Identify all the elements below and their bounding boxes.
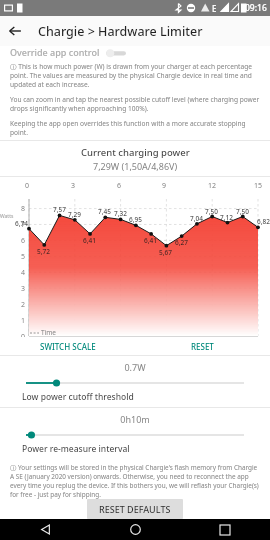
staticText: 7,12 — [220, 213, 233, 222]
staticText: 1 — [21, 316, 26, 326]
staticText: 7,50 — [236, 207, 249, 216]
staticText: 2 — [21, 300, 26, 310]
staticText: Keeping the app open overrides this func… — [10, 119, 260, 137]
staticText: 7,50 — [205, 207, 218, 216]
staticText: Power re-measure interval — [22, 443, 130, 455]
staticText: Watts — [0, 213, 14, 220]
staticText: 7,04 — [190, 214, 203, 223]
staticText: 7,45 — [98, 207, 111, 216]
staticText: Current charging power — [81, 146, 190, 159]
staticText: RESET DEFAULTS — [99, 503, 171, 515]
staticText: 12 — [208, 181, 217, 191]
staticText: Chargie > Hardware Limiter — [38, 23, 203, 40]
button[interactable]: RESET — [135, 337, 270, 355]
staticText: 6,41 — [144, 236, 157, 245]
staticText: 09:16 — [245, 2, 267, 14]
staticText: 4 — [21, 268, 26, 278]
staticText: You can zoom in and tap the nearest poss… — [10, 95, 260, 113]
staticText: Time — [41, 328, 57, 337]
button[interactable]: Back — [0, 16, 30, 46]
staticText: 7,29 — [68, 210, 81, 219]
staticText: 6 — [117, 181, 122, 191]
staticText: 5,72 — [37, 247, 50, 256]
staticText: 0 — [21, 332, 26, 337]
staticText: 0.7W — [0, 361, 270, 373]
staticText: 6,41 — [83, 236, 96, 245]
staticText: 0 — [25, 181, 30, 191]
staticText: ⓘ This is how much power (W) is drawn fr… — [10, 62, 260, 89]
staticText: 7,29W (1,50A/4,86V) — [93, 160, 178, 172]
staticText: 5 — [21, 252, 26, 262]
staticText: RESET — [191, 341, 214, 352]
staticText: 0h10m — [0, 413, 270, 425]
staticText: 5,67 — [159, 248, 172, 257]
staticText: 15 — [254, 181, 263, 191]
staticText: 3 — [71, 181, 76, 191]
button[interactable]: Home — [90, 519, 180, 540]
staticText: 6 — [21, 236, 26, 246]
staticText: E — [212, 3, 217, 14]
staticText: 9 — [162, 181, 167, 191]
staticText: 6,82 — [257, 217, 270, 226]
staticText: 6,27 — [175, 238, 188, 247]
staticText: 6,95 — [129, 215, 142, 224]
staticText: 3 — [21, 284, 26, 294]
staticText: 8 — [21, 204, 26, 214]
staticText: 7,57 — [53, 205, 66, 214]
staticText: Low power cutoff threshold — [22, 391, 134, 403]
button[interactable]: Recent apps — [180, 519, 270, 540]
staticText: SWITCH SCALE — [40, 341, 96, 352]
staticText: 7 — [21, 220, 26, 230]
button[interactable]: SWITCH SCALE — [0, 337, 135, 355]
staticText: ⓘ Your settings will be stored in the ph… — [10, 463, 260, 499]
staticText: Override app control — [10, 46, 100, 58]
button[interactable]: RESET DEFAULTS — [87, 499, 183, 519]
staticText: 6,74 — [15, 219, 28, 228]
staticText: 7,32 — [114, 209, 127, 218]
button[interactable]: Override app control — [0, 46, 270, 58]
button[interactable]: 0h10m — [0, 408, 270, 459]
button[interactable]: 0.7W — [0, 356, 270, 407]
button[interactable]: Back — [0, 519, 90, 540]
